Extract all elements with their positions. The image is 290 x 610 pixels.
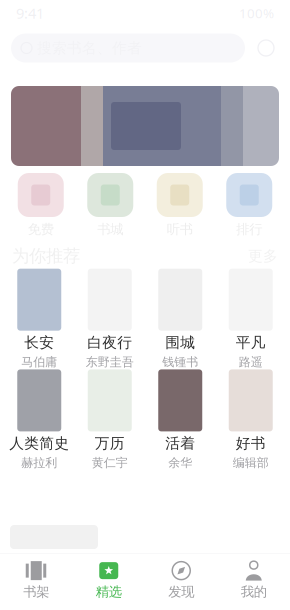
button[interactable]: 长安	[4, 269, 74, 369]
button[interactable]: 书架	[0, 554, 72, 610]
button[interactable]: 人类简史	[4, 369, 74, 470]
staticText: 免费	[28, 221, 54, 237]
button[interactable]	[0, 86, 290, 166]
staticText: 黄仁宇	[92, 455, 128, 470]
staticText: 书城	[97, 221, 123, 237]
staticText: 书架	[23, 584, 49, 600]
button[interactable]: 万历	[74, 369, 145, 470]
button[interactable]: 扫一扫	[253, 35, 279, 61]
staticText: 更多	[248, 247, 278, 265]
button[interactable]: 好书	[215, 369, 286, 470]
button[interactable]: 围城	[145, 269, 215, 369]
button[interactable]: 更多	[248, 247, 278, 265]
staticText: 为你推荐	[12, 245, 80, 267]
staticText: 平凡	[236, 334, 266, 352]
staticText: 马伯庸	[21, 355, 57, 369]
button[interactable]: 听书	[145, 173, 214, 237]
staticText: 长安	[24, 334, 54, 352]
staticText: 活着	[165, 434, 195, 452]
staticText: 钱锺书	[162, 355, 198, 369]
staticText: 白夜行	[87, 334, 132, 352]
staticText: 我的	[241, 584, 267, 600]
staticText: 万历	[95, 434, 125, 452]
staticText: 100%	[239, 4, 274, 22]
staticText: 围城	[165, 334, 195, 352]
staticText: 9:41	[16, 3, 44, 23]
button[interactable]: 活着	[145, 369, 215, 470]
staticText: 人类简史	[9, 434, 69, 452]
staticText: 赫拉利	[21, 455, 57, 470]
button[interactable]: 书城	[75, 173, 145, 237]
staticText: 路遥	[239, 355, 263, 369]
staticText: 余华	[168, 455, 192, 470]
staticText: 好书	[236, 434, 266, 452]
staticText: 排行	[236, 221, 262, 237]
staticText: 发现	[168, 584, 194, 600]
button[interactable]: 平凡	[215, 269, 286, 369]
button[interactable]: 排行	[214, 173, 284, 237]
button[interactable]: 白夜行	[74, 269, 145, 369]
button[interactable]: 发现	[145, 554, 217, 610]
button[interactable]: 我的	[217, 554, 290, 610]
staticText: 听书	[167, 221, 193, 237]
button[interactable]: 免费	[6, 173, 75, 237]
button[interactable]: 精选	[72, 554, 145, 610]
staticText: 精选	[96, 584, 122, 600]
staticText: 东野圭吾	[86, 355, 134, 369]
staticText: 编辑部	[233, 455, 269, 470]
